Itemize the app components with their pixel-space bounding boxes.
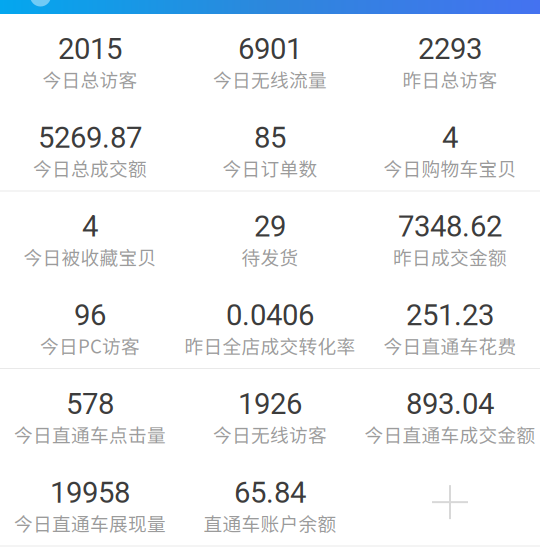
staticText: 今日购物车宝贝 [383, 154, 516, 181]
staticText: 4 [442, 121, 458, 155]
staticText: 今日总成交额 [33, 154, 147, 181]
staticText: 直通车账户余额 [203, 509, 336, 536]
staticText: 2293 [418, 32, 482, 66]
staticText: 96 [74, 298, 106, 332]
button[interactable]: 893.04 [360, 369, 540, 458]
button[interactable]: 2015 [0, 14, 180, 103]
button[interactable]: 251.23 [360, 280, 540, 369]
button[interactable]: 19958 [0, 458, 180, 547]
staticText: 0.0406 [226, 298, 314, 332]
staticText: 893.04 [406, 387, 494, 421]
button[interactable]: Add metric [360, 458, 540, 547]
staticText: 待发货 [241, 243, 298, 270]
staticText: 19958 [50, 476, 130, 510]
staticText: 今日总访客 [42, 65, 137, 92]
button[interactable]: 4 [0, 191, 180, 280]
staticText: 578 [66, 387, 114, 421]
button[interactable]: 29 [180, 191, 360, 280]
staticText: 今日PC访客 [40, 332, 140, 359]
button[interactable]: 85 [180, 103, 360, 192]
button[interactable]: 2293 [360, 14, 540, 103]
staticText: 今日直通车展现量 [14, 509, 166, 536]
button[interactable]: 1926 [180, 369, 360, 458]
button[interactable]: 0.0406 [180, 280, 360, 369]
staticText: 今日无线流量 [213, 65, 327, 92]
staticText: 4 [82, 209, 98, 244]
staticText: 2015 [58, 32, 122, 66]
button[interactable]: 4 [360, 103, 540, 192]
staticText: 今日直通车成交金额 [364, 420, 535, 447]
staticText: 5269.87 [38, 121, 142, 155]
staticText: 65.84 [234, 476, 306, 510]
staticText: 251.23 [406, 298, 494, 332]
staticText: 今日直通车花费 [383, 332, 516, 359]
staticText: 今日被收藏宝贝 [23, 243, 156, 270]
button[interactable]: 96 [0, 280, 180, 369]
button[interactable]: 65.84 [180, 458, 360, 547]
button[interactable]: 7348.62 [360, 191, 540, 280]
staticText: 今日无线访客 [213, 420, 327, 447]
staticText: 1926 [238, 387, 302, 421]
staticText: 85 [254, 121, 286, 155]
button[interactable]: 578 [0, 369, 180, 458]
staticText: 今日直通车点击量 [14, 420, 166, 447]
staticText: 昨日总访客 [402, 65, 497, 92]
button[interactable]: 5269.87 [0, 103, 180, 192]
staticText: 今日订单数 [222, 154, 317, 181]
staticText: 昨日成交金额 [393, 243, 507, 270]
staticText: 29 [254, 209, 286, 244]
staticText: 6901 [238, 32, 302, 66]
staticText: 7348.62 [398, 209, 502, 244]
button[interactable]: 6901 [180, 14, 360, 103]
staticText: 昨日全店成交转化率 [184, 332, 355, 359]
